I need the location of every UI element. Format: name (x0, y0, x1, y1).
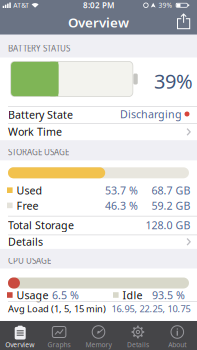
staticText: CPU USAGE (8, 255, 51, 266)
staticText: Avg Load (1, 5, 15 min) (8, 303, 106, 315)
staticText: 6.5 % (52, 288, 79, 302)
staticText: STORAGE USAGE (8, 147, 69, 157)
staticText: 39% (154, 68, 193, 94)
button[interactable]: Memory (79, 321, 118, 350)
staticText: 128.0 GB (145, 218, 190, 232)
staticText: Work Time (8, 125, 62, 139)
staticText: Usage (16, 288, 48, 302)
staticText: AT&T (13, 1, 29, 10)
button[interactable]: About (158, 321, 197, 350)
button[interactable]: Details (0, 234, 197, 249)
staticText: Details (127, 340, 149, 349)
staticText: 53.7 % (105, 183, 138, 197)
staticText: 68.7 GB (151, 183, 190, 197)
staticText: Graphs (48, 340, 71, 349)
staticText: 46.3 % (105, 198, 138, 213)
staticText: Overview (5, 340, 34, 349)
button[interactable]: Details (118, 321, 158, 350)
staticText: 93.5 % (152, 288, 185, 302)
staticText: Used (16, 183, 42, 197)
staticText: 59.2 GB (151, 198, 190, 213)
staticText: About (168, 340, 186, 349)
staticText: Overview (68, 13, 129, 31)
staticText: 16.95, 22.25, 10.75 (111, 303, 190, 315)
button[interactable]: Work Time (0, 123, 197, 140)
button[interactable]: Overview (0, 321, 39, 350)
staticText: BATTERY STATUS (8, 43, 70, 54)
staticText: Total Storage (8, 218, 74, 232)
staticText: Details (8, 235, 43, 249)
staticText: Idle (122, 288, 142, 302)
staticText: 39% (158, 1, 172, 10)
staticText: Battery State (8, 107, 73, 122)
staticText: 8:02 PM (83, 0, 114, 10)
button[interactable]: Graphs (39, 321, 79, 350)
staticText: Discharging (120, 107, 182, 121)
staticText: Free (16, 198, 38, 213)
button[interactable]: Share (173, 10, 194, 33)
staticText: Memory (85, 340, 111, 349)
